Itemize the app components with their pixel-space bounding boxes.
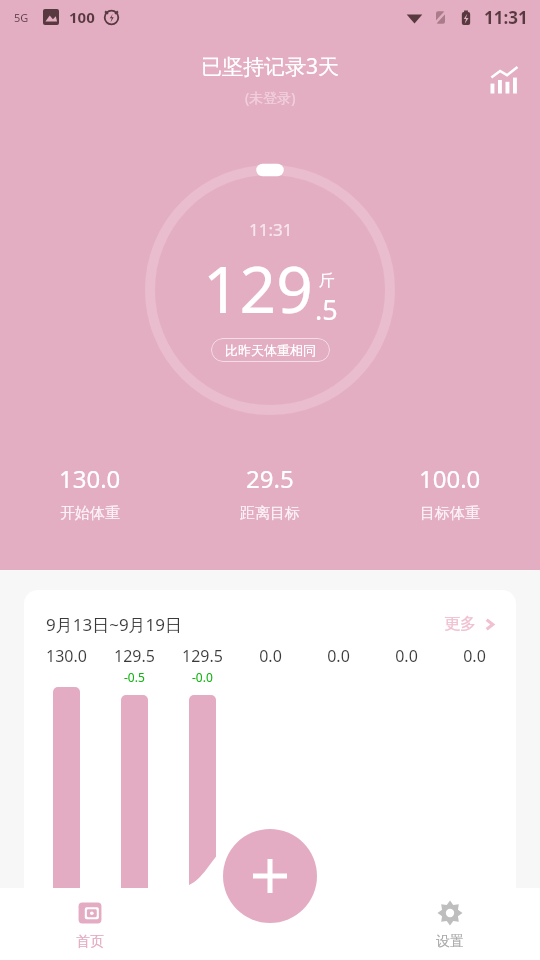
staticText: 0.0 [259,645,282,667]
staticText: 11:31 [249,218,293,241]
staticText: 0.0 [463,645,486,667]
staticText: 129.5 [182,645,223,667]
staticText: -0.0 [192,669,213,685]
staticText: 设置 [436,933,464,951]
staticText: 130.0 [59,462,121,495]
staticText: 斤 [319,271,335,291]
button[interactable]: 130.0 [0,462,180,523]
staticText: (未登录) [245,88,296,107]
staticText: 11:31 [484,6,528,29]
staticText: 目标体重 [420,504,480,523]
staticText: 首页 [76,933,104,951]
staticText: -0.5 [124,669,145,685]
staticText: 更多 [444,614,476,634]
staticText: 29.5 [246,462,294,495]
staticText: 已坚持记录3天 [201,52,340,81]
staticText: 距离目标 [240,504,300,523]
staticText: 0.0 [327,645,350,667]
staticText: 100 [69,7,95,27]
staticText: 5G [14,10,29,25]
staticText: 129.5 [114,645,155,667]
staticText: 130.0 [46,645,87,667]
staticText: 100.0 [419,462,481,495]
button[interactable]: 29.5 [180,462,360,523]
staticText: 0.0 [395,645,418,667]
staticText: 比昨天体重相同 [225,342,316,358]
staticText: .5 [315,291,338,328]
staticText: 9月13日~9月19日 [46,613,183,636]
button[interactable]: 首页 [0,890,180,960]
button[interactable]: 比昨天体重相同 [211,338,330,362]
staticText: 129 [203,245,313,332]
button[interactable]: 统计图表 [480,56,528,104]
staticText: 开始体重 [60,504,120,523]
button[interactable]: 设置 [360,890,540,960]
button[interactable]: 添加记录 [223,829,317,923]
button[interactable]: 更多 [440,610,500,638]
button[interactable]: 100.0 [360,462,540,523]
